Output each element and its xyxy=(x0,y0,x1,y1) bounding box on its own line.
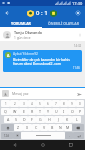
button[interactable]: Q xyxy=(1,108,10,115)
staticText: T xyxy=(39,109,41,114)
button[interactable]: X xyxy=(23,124,32,131)
button[interactable]: Z xyxy=(14,124,23,131)
button[interactable]: 4 xyxy=(28,100,36,107)
button[interactable]: A xyxy=(4,116,12,123)
staticText: A xyxy=(7,117,10,122)
button[interactable]: P xyxy=(76,108,84,115)
button[interactable]: Y xyxy=(44,108,52,115)
button[interactable] xyxy=(21,132,65,139)
button[interactable]: D xyxy=(20,116,28,123)
button[interactable]: U xyxy=(52,108,60,115)
button[interactable]: Settings xyxy=(71,6,85,19)
staticText: K xyxy=(66,117,69,122)
button[interactable]: 8 xyxy=(60,100,68,107)
button[interactable]: R xyxy=(28,108,36,115)
button[interactable]: B xyxy=(48,124,56,131)
button[interactable]: E xyxy=(19,108,28,115)
button[interactable]: I xyxy=(60,108,68,115)
button[interactable]: M xyxy=(64,124,72,131)
staticText: D xyxy=(23,117,26,122)
staticText: 8 xyxy=(63,102,65,106)
button[interactable]: Recent apps xyxy=(57,140,85,150)
staticText: 2 xyxy=(14,102,16,106)
button[interactable]: Key xyxy=(1,124,14,131)
button[interactable]: T xyxy=(36,108,44,115)
staticText: Tanju Okwando xyxy=(14,30,43,35)
button[interactable]: G xyxy=(36,116,45,123)
button[interactable]: 7 xyxy=(52,100,60,107)
staticText: YORUMLAR xyxy=(11,21,31,26)
button[interactable]: V xyxy=(40,124,48,131)
button[interactable]: Key xyxy=(1,132,13,139)
button[interactable]: H xyxy=(45,116,54,123)
button[interactable]: A xyxy=(3,50,82,72)
button[interactable]: YORUMLAR xyxy=(0,19,42,27)
button[interactable]: L xyxy=(72,116,81,123)
button[interactable]: Add photo xyxy=(2,90,9,97)
button[interactable]: Home xyxy=(29,140,57,150)
staticText: 12# xyxy=(4,134,10,138)
staticText: J xyxy=(58,117,59,122)
staticText: Bizimkiler de çok kazandın bir bahis for… xyxy=(13,57,80,66)
staticText: C xyxy=(35,125,38,130)
staticText: M xyxy=(66,125,70,130)
staticText: B xyxy=(51,125,54,130)
button[interactable]: C xyxy=(32,124,40,131)
staticText: L xyxy=(76,117,78,122)
staticText: 3 xyxy=(23,102,25,106)
button[interactable]: 1 xyxy=(1,100,10,107)
staticText: 14:32 xyxy=(74,44,82,48)
staticText: V xyxy=(43,125,46,130)
staticText: 17:30 xyxy=(72,1,83,6)
button[interactable]: Key xyxy=(72,124,84,131)
button[interactable]: Key xyxy=(13,132,21,139)
button[interactable]: W xyxy=(10,108,19,115)
button[interactable]: Key xyxy=(73,132,84,139)
button[interactable]: Back xyxy=(0,6,14,19)
staticText: W xyxy=(13,109,17,114)
staticText: A xyxy=(7,53,10,58)
staticText: R xyxy=(31,109,34,114)
staticText: N xyxy=(59,125,62,130)
button[interactable]: S xyxy=(12,116,20,123)
button[interactable]: ÖNEMLİ OLAYLAR xyxy=(42,19,85,27)
button[interactable]: 0 xyxy=(76,100,84,107)
button[interactable]: 2 xyxy=(10,100,19,107)
button[interactable]: N xyxy=(56,124,64,131)
staticText: U xyxy=(55,109,58,114)
staticText: 1 xyxy=(5,102,7,106)
staticText: Aykut Yıldırım92 xyxy=(13,52,38,56)
staticText: H xyxy=(48,117,51,122)
button[interactable]: Tanju Okwando xyxy=(0,28,85,41)
staticText: Y xyxy=(47,109,50,114)
staticText: 11:36 xyxy=(73,66,80,70)
staticText: F xyxy=(31,117,33,122)
staticText: X xyxy=(26,125,29,130)
staticText: 1 gün önce xyxy=(14,36,31,40)
button[interactable]: 9 xyxy=(68,100,76,107)
staticText: 0 xyxy=(79,102,81,106)
button[interactable]: Back xyxy=(0,140,29,150)
staticText: 6 xyxy=(47,102,49,106)
staticText: Q xyxy=(4,109,7,114)
button[interactable]: 6 xyxy=(44,100,52,107)
staticText: I xyxy=(63,109,65,114)
staticText: 4 xyxy=(31,102,33,106)
staticText: E xyxy=(23,109,25,114)
staticText: ÖNEMLİ OLAYLAR xyxy=(48,21,79,26)
staticText: G xyxy=(39,117,42,122)
button[interactable]: J xyxy=(54,116,63,123)
button[interactable]: 5 xyxy=(36,100,44,107)
button[interactable]: Mesaj yaz xyxy=(12,91,75,96)
staticText: Mesaj yaz xyxy=(12,91,29,96)
staticText: 0 : 1 xyxy=(36,9,48,17)
button[interactable]: More options xyxy=(77,30,82,40)
staticText: . xyxy=(69,133,70,138)
button[interactable]: F xyxy=(28,116,36,123)
staticText: 9 xyxy=(71,102,73,106)
button[interactable]: 3 xyxy=(19,100,28,107)
button[interactable]: K xyxy=(63,116,72,123)
button[interactable]: Send xyxy=(75,90,83,98)
button[interactable]: O xyxy=(68,108,76,115)
